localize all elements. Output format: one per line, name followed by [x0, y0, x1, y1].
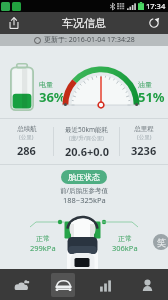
- staticText: 胎压状态: [68, 172, 100, 182]
- staticText: 3236: [131, 143, 157, 158]
- staticText: 更新于: 2016-01-04 17:34:28: [44, 35, 135, 45]
- staticText: 正常: [118, 234, 132, 243]
- staticText: (公里): [19, 133, 34, 141]
- staticText: 车况信息: [62, 16, 106, 30]
- staticText: 188~325kPa: [63, 195, 106, 205]
- staticText: 前/后胎压参考值: [60, 186, 108, 195]
- button[interactable]: Weather: [0, 269, 42, 300]
- staticText: 36%: [39, 88, 66, 106]
- button[interactable]: Car: [42, 269, 84, 300]
- staticText: 286: [17, 143, 36, 158]
- staticText: 正常: [36, 234, 50, 243]
- button[interactable]: 胎压状态: [61, 170, 107, 184]
- staticText: (度/升/百公里): [69, 134, 104, 142]
- staticText: 总续航: [17, 125, 37, 133]
- staticText: 电量: [39, 80, 53, 89]
- staticText: 51%: [138, 88, 165, 106]
- button[interactable]: Help: [153, 234, 168, 250]
- staticText: 299kPa: [30, 243, 56, 253]
- staticText: 最近50km能耗: [65, 125, 108, 134]
- staticText: 20.6+0.0: [65, 144, 109, 159]
- staticText: 总里程: [134, 125, 154, 133]
- button[interactable]: 最近50km能耗: [54, 119, 119, 164]
- staticText: (公里): [137, 133, 152, 141]
- button[interactable]: Statistics: [84, 269, 126, 300]
- button[interactable]: 总里程: [120, 119, 168, 164]
- staticText: 306kPa: [112, 243, 138, 253]
- button[interactable]: 总续航: [0, 119, 53, 164]
- staticText: 17:34: [146, 1, 166, 11]
- button[interactable]: Profile: [126, 269, 168, 300]
- button[interactable]: Refresh: [140, 12, 168, 34]
- staticText: 笑: [157, 237, 166, 248]
- staticText: 油量: [138, 80, 152, 89]
- button[interactable]: Share: [0, 12, 28, 34]
